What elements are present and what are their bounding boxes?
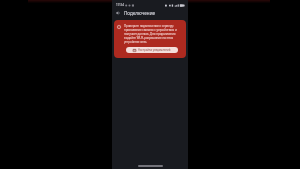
staticText: 17:34 [116, 3, 124, 7]
button[interactable]: Проверьте подключение к серверу: приложе… [114, 20, 186, 58]
staticText: Проверьте подключение к серверу: приложе… [124, 24, 180, 44]
staticText: Подключение [124, 10, 156, 16]
button[interactable]: Настройки уведомлений [126, 47, 178, 53]
staticText: Настройки уведомлений [138, 48, 171, 52]
button[interactable]: Back [114, 9, 122, 17]
